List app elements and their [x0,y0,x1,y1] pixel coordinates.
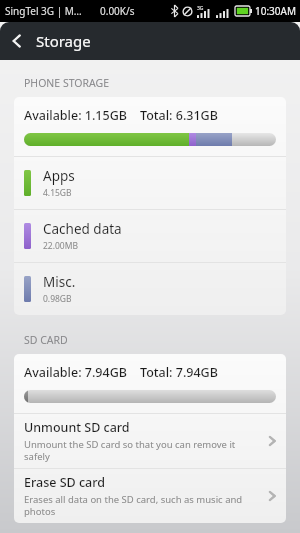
staticText: 0.00K/s [100,4,135,18]
staticText: SD CARD [24,333,68,347]
button[interactable]: Apps [14,157,286,209]
staticText: Available: 1.15GB [24,107,127,124]
staticText: Cached data [43,220,122,238]
staticText: PHONE STORAGE [24,76,109,90]
button[interactable]: Unmount SD card [14,414,286,468]
button[interactable]: Misc. [14,263,286,315]
button[interactable]: Erase SD card [14,469,286,523]
button[interactable]: Back [0,24,34,58]
staticText: Total: 6.31GB [140,107,218,124]
staticText: Unmount SD card [24,419,130,436]
staticText: 22.00MB [43,240,78,252]
staticText: Unmount the SD card so that you can remo… [24,438,260,463]
staticText: Apps [43,167,75,185]
staticText: 4.15GB [43,187,72,199]
staticText: Total: 7.94GB [140,364,218,381]
button[interactable]: Cached data [14,210,286,262]
staticText: SingTel 3G | M… [5,4,82,18]
staticText: 3G [197,5,204,12]
staticText: 10:30AM [255,4,297,18]
staticText: Erases all data on the SD card, such as … [24,493,260,518]
staticText: Erase SD card [24,474,105,491]
staticText: Storage [36,31,91,51]
staticText: Available: 7.94GB [24,364,127,381]
staticText: 0.98GB [43,293,72,305]
staticText: Misc. [43,273,76,291]
